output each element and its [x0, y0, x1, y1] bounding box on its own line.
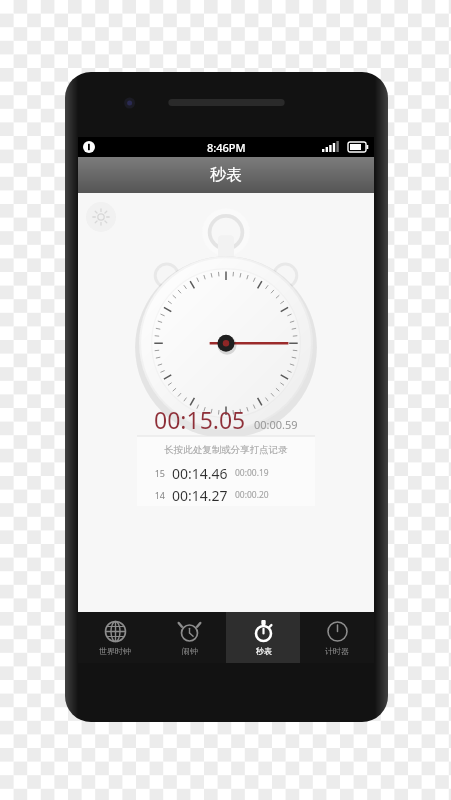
button[interactable]: 秒表	[226, 612, 300, 663]
staticText: 00:15.05	[154, 404, 246, 435]
staticText: 00:00.20	[235, 489, 269, 501]
staticText: 世界时钟	[99, 646, 131, 656]
staticText: 00:14.46	[172, 464, 228, 483]
staticText: 计时器	[325, 646, 349, 656]
button[interactable]: 世界时钟	[78, 612, 152, 663]
staticText: 00:00.59	[254, 417, 298, 432]
staticText: 14	[147, 489, 165, 501]
button[interactable]: Brightness	[86, 202, 116, 232]
staticText: 00:14.27	[172, 486, 228, 505]
button[interactable]: 计时器	[300, 612, 374, 663]
button[interactable]: 闹钟	[152, 612, 226, 663]
staticText: 秒表	[210, 165, 242, 185]
staticText: 00:00.19	[235, 467, 269, 479]
staticText: 闹钟	[182, 646, 198, 656]
staticText: 15	[147, 467, 165, 479]
staticText: 长按此处复制或分享打点记录	[137, 444, 315, 456]
staticText: 秒表	[256, 646, 272, 656]
button[interactable]: 长按此处复制或分享打点记录	[137, 436, 315, 506]
staticText: 8:46PM	[207, 140, 246, 155]
